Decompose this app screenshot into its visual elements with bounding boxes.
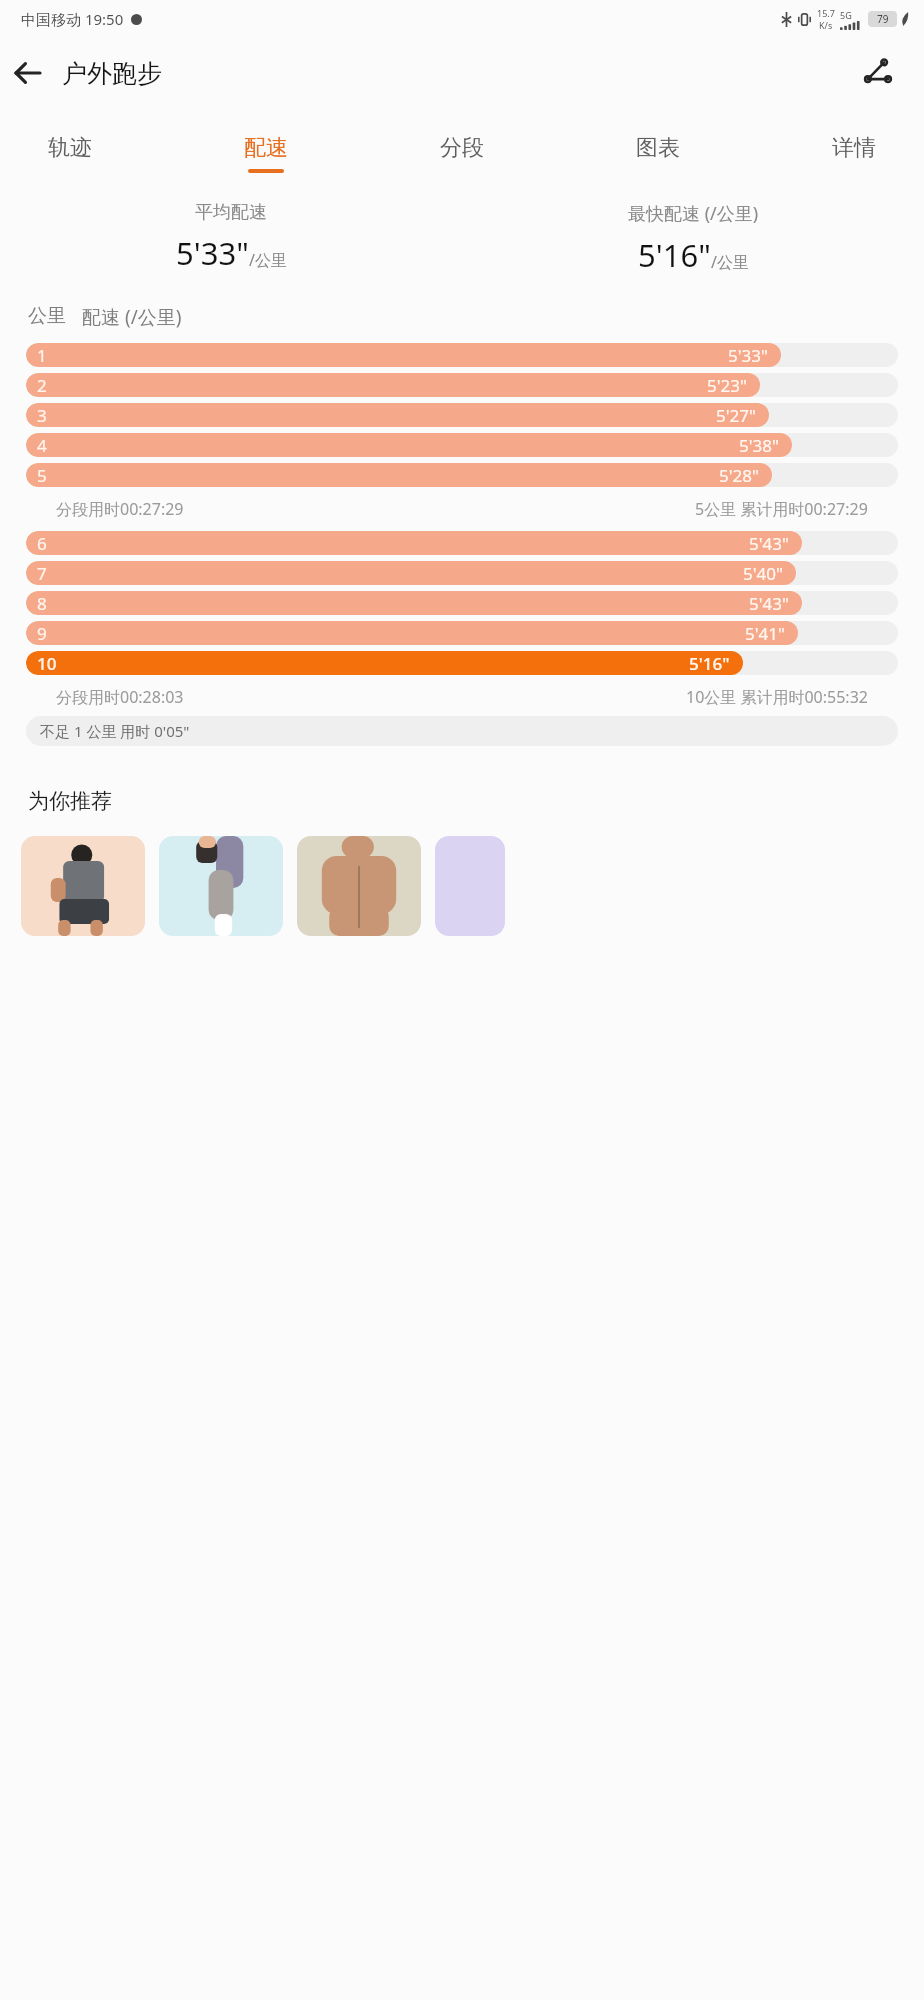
button[interactable]: 配速 (240, 134, 292, 173)
button[interactable]: 不足 1 公里 用时 0'05" (26, 716, 898, 746)
staticText: 5'16" (689, 652, 730, 675)
staticText: 3 (37, 404, 47, 427)
button[interactable]: 轨迹 (44, 134, 96, 173)
staticText: /公里 (249, 249, 287, 271)
staticText: 9 (37, 622, 47, 645)
staticText: 最快配速 (/公里) (628, 201, 759, 226)
staticText: 5'38" (739, 434, 779, 457)
button[interactable]: 7 (26, 561, 898, 585)
button[interactable] (435, 836, 505, 936)
staticText: 5'23" (707, 374, 747, 397)
staticText: 5'28" (719, 464, 759, 487)
staticText: 平均配速 (195, 201, 267, 224)
staticText: 10 (37, 652, 57, 675)
button[interactable]: 详情 (828, 134, 880, 173)
staticText: 不足 1 公里 用时 0'05" (40, 721, 190, 741)
button[interactable]: 返回 (0, 48, 54, 98)
button[interactable]: 5 (26, 463, 898, 487)
staticText: 7 (37, 562, 47, 585)
button[interactable]: 3 (26, 403, 898, 427)
staticText: 分段 (440, 134, 484, 162)
staticText: 公里 (28, 304, 66, 328)
button[interactable]: 9 (26, 621, 898, 645)
staticText: 5'33" (728, 344, 768, 367)
staticText: 配速 (244, 134, 288, 162)
staticText: 15.7 (817, 7, 835, 19)
staticText: 8 (37, 592, 47, 615)
staticText: 轨迹 (48, 134, 92, 162)
staticText: 5'40" (743, 562, 783, 585)
staticText: 户外跑步 (62, 58, 162, 89)
staticText: 10公里 累计用时00:55:32 (686, 686, 868, 708)
staticText: /公里 (711, 251, 749, 273)
staticText: 4 (37, 434, 47, 457)
staticText: 详情 (832, 134, 876, 162)
staticText: 1 (37, 344, 47, 367)
staticText: 5'43" (749, 532, 789, 555)
button[interactable]: 图表 (632, 134, 684, 173)
button[interactable]: 8 (26, 591, 898, 615)
staticText: K/s (819, 19, 833, 31)
staticText: 5G (840, 9, 852, 21)
staticText: 分段用时00:27:29 (56, 498, 184, 520)
button[interactable]: 6 (26, 531, 898, 555)
staticText: 5 (37, 464, 47, 487)
staticText: 5'16" (638, 234, 711, 276)
button[interactable] (21, 836, 145, 936)
button[interactable]: 10 (26, 651, 898, 675)
staticText: 5'33" (176, 232, 249, 274)
staticText: 5'43" (749, 592, 789, 615)
button[interactable]: 4 (26, 433, 898, 457)
button[interactable]: 分段 (436, 134, 488, 173)
button[interactable]: 1 (26, 343, 898, 367)
staticText: 2 (37, 374, 47, 397)
button[interactable] (159, 836, 283, 936)
staticText: 5'41" (745, 622, 785, 645)
staticText: 6 (37, 532, 47, 555)
staticText: 为你推荐 (28, 788, 112, 814)
staticText: 图表 (636, 134, 680, 162)
staticText: 中国移动 19:50 (21, 9, 124, 29)
staticText: 79 (877, 12, 889, 26)
staticText: 5'27" (716, 404, 756, 427)
button[interactable]: 分享 (852, 48, 904, 98)
button[interactable]: 2 (26, 373, 898, 397)
staticText: 分段用时00:28:03 (56, 686, 184, 708)
button[interactable] (297, 836, 421, 936)
staticText: 5公里 累计用时00:27:29 (695, 498, 868, 520)
staticText: 配速 (/公里) (82, 304, 182, 330)
